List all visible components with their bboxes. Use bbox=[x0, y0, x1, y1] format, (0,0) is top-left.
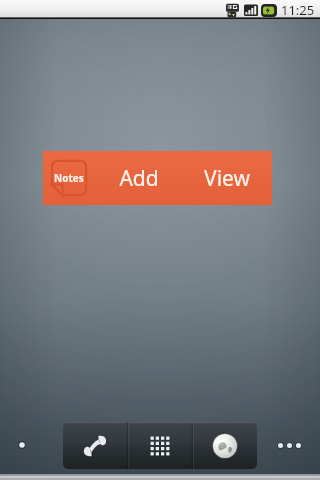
button[interactable]: Phone bbox=[63, 422, 127, 469]
button[interactable]: Add bbox=[95, 151, 182, 205]
staticText: 11:25 bbox=[281, 1, 315, 19]
staticText: Add bbox=[119, 164, 159, 193]
staticText: View bbox=[204, 164, 250, 193]
staticText: Notes bbox=[54, 171, 84, 185]
button[interactable]: All apps bbox=[127, 422, 192, 469]
button[interactable]: Notes bbox=[43, 151, 95, 205]
button[interactable]: View bbox=[182, 151, 272, 205]
button[interactable]: Browser bbox=[192, 422, 257, 469]
